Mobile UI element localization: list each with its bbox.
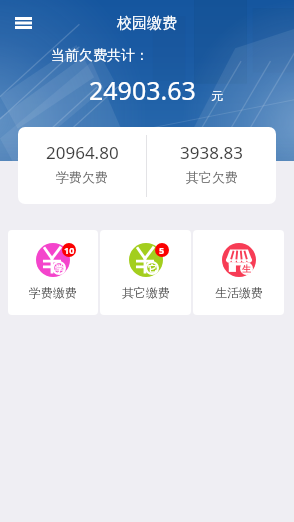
- staticText: 其它缴费: [122, 285, 170, 300]
- staticText: 学: [55, 263, 64, 274]
- staticText: 元: [211, 88, 223, 103]
- staticText: 它: [148, 263, 157, 274]
- staticText: 3938.83: [180, 141, 243, 164]
- button[interactable]: 3938.83: [147, 127, 276, 204]
- staticText: 24903.63: [89, 73, 196, 107]
- staticText: 20964.80: [46, 141, 119, 164]
- staticText: 生: [242, 263, 251, 274]
- button[interactable]: 20964.80: [18, 127, 146, 204]
- button[interactable]: 生: [193, 230, 284, 315]
- staticText: 生活缴费: [215, 285, 263, 300]
- staticText: 其它欠费: [186, 169, 238, 185]
- button[interactable]: Menu: [0, 0, 46, 46]
- button[interactable]: 它: [100, 230, 191, 315]
- staticText: 学费缴费: [29, 285, 77, 300]
- staticText: 学费欠费: [56, 169, 108, 185]
- staticText: 5: [159, 244, 165, 256]
- staticText: 10: [64, 244, 75, 256]
- staticText: 当前欠费共计：: [51, 47, 149, 65]
- staticText: 校园缴费: [117, 14, 177, 33]
- button[interactable]: 学: [8, 230, 98, 315]
